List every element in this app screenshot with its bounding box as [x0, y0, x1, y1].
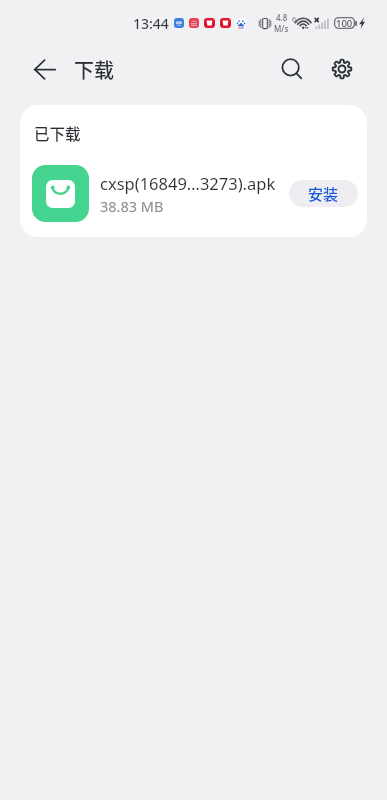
staticText: 下载 [74, 55, 114, 84]
staticText: 已下载 [34, 122, 81, 144]
button[interactable]: Back [24, 49, 64, 89]
staticText: cxsp(16849…3273).apk [100, 172, 276, 194]
staticText: 安装 [308, 183, 339, 205]
button[interactable]: Settings [322, 49, 362, 89]
button[interactable]: Search [272, 49, 312, 89]
staticText: 4.8 [276, 12, 288, 23]
staticText: 6 [292, 15, 297, 25]
staticText: 100 [336, 17, 353, 29]
button[interactable]: 安装 [289, 180, 358, 207]
staticText: 38.83 MB [100, 196, 164, 216]
staticText: M/s [274, 23, 289, 34]
staticText: 13:44 [133, 14, 169, 33]
